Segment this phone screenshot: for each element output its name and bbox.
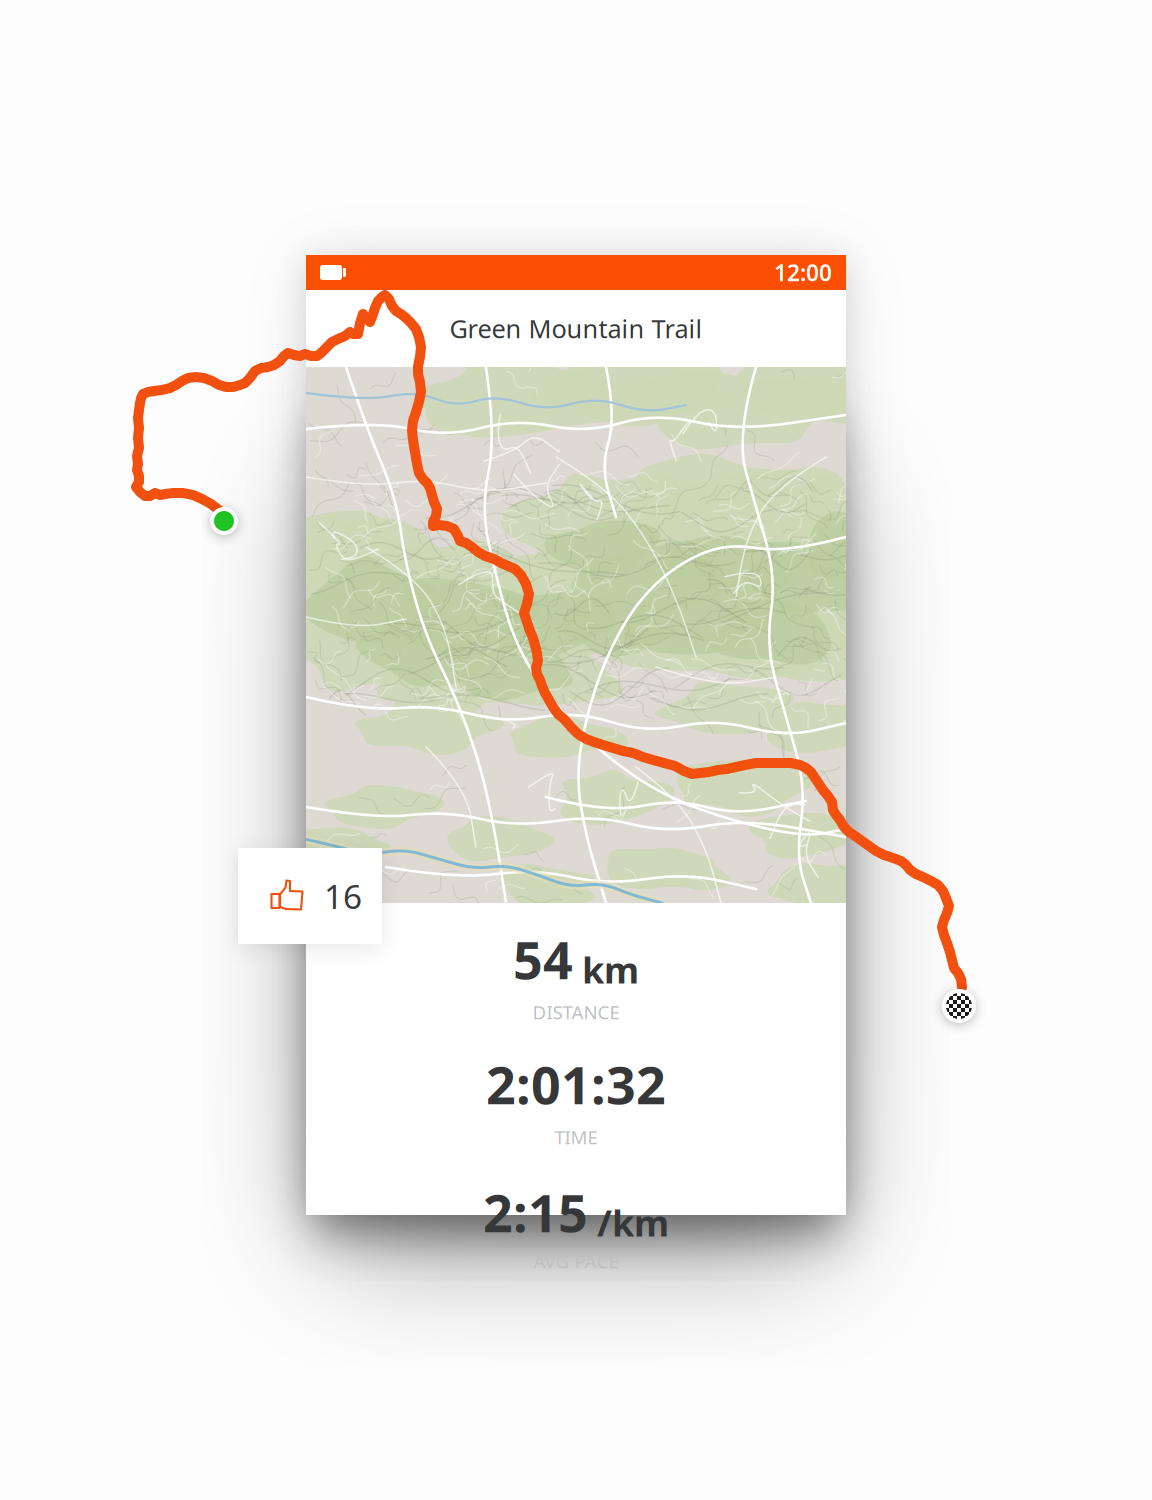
staticText: 54 [513, 924, 573, 994]
staticText: 12:00 [774, 257, 832, 287]
staticText: 16 [324, 874, 362, 918]
staticText: 2:15 [483, 1177, 588, 1247]
staticText: 2:01:32 [486, 1049, 666, 1119]
staticText: /km [588, 1199, 669, 1246]
staticText: DISTANCE [532, 1000, 619, 1024]
staticText: TIME [554, 1125, 597, 1149]
staticText: AVG PACE [533, 1249, 618, 1273]
button[interactable]: 16 [238, 848, 382, 944]
staticText: km [573, 946, 639, 993]
staticText: Green Mountain Trail [449, 312, 702, 345]
